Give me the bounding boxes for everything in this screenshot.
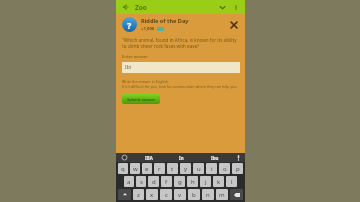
- staticText: s: [140, 178, 143, 186]
- button[interactable]: Ibu: [198, 153, 231, 162]
- staticText: "Which animal, found in Africa, is known…: [122, 37, 240, 49]
- button[interactable]: n: [202, 189, 214, 200]
- button[interactable]: v: [174, 189, 186, 200]
- staticText: l: [231, 178, 233, 186]
- staticText: Write the answer in English. If it's dif…: [122, 79, 240, 89]
- staticText: w: [133, 165, 138, 173]
- button[interactable]: r: [154, 163, 165, 174]
- staticText: Zoo: [135, 3, 147, 12]
- staticText: h: [191, 178, 195, 186]
- staticText: +1,000: [141, 26, 155, 32]
- staticText: o: [223, 165, 227, 173]
- button[interactable]: x: [146, 189, 158, 200]
- staticText: b: [192, 191, 196, 199]
- staticText: Riddle of the Day: [141, 17, 189, 25]
- button[interactable]: p: [232, 163, 243, 174]
- button[interactable]: Ibi: [122, 62, 240, 73]
- staticText: Ibu: [211, 155, 219, 161]
- staticText: IBA: [145, 155, 153, 161]
- button[interactable]: Voice input: [231, 153, 245, 162]
- staticText: Submit answer: [127, 97, 156, 102]
- button[interactable]: y: [180, 163, 191, 174]
- button[interactable]: f: [161, 176, 172, 187]
- button[interactable]: k: [213, 176, 224, 187]
- staticText: r: [158, 165, 161, 173]
- button[interactable]: z: [133, 189, 144, 200]
- staticText: n: [206, 191, 210, 199]
- staticText: v: [178, 191, 182, 199]
- button[interactable]: m: [216, 189, 228, 200]
- button[interactable]: i: [206, 163, 217, 174]
- staticText: t: [171, 165, 174, 173]
- button[interactable]: Back: [120, 2, 130, 12]
- button[interactable]: d: [148, 176, 159, 187]
- staticText: a: [127, 178, 131, 186]
- button[interactable]: c: [160, 189, 172, 200]
- button[interactable]: Settings: [116, 153, 132, 162]
- staticText: k: [217, 178, 221, 186]
- staticText: z: [137, 191, 140, 199]
- button[interactable]: q: [118, 163, 128, 174]
- button[interactable]: s: [136, 176, 146, 187]
- button[interactable]: j: [200, 176, 211, 187]
- button[interactable]: w: [130, 163, 140, 174]
- staticText: i: [211, 165, 213, 173]
- button[interactable]: l: [226, 176, 237, 187]
- staticText: i: [235, 3, 237, 12]
- staticText: d: [152, 178, 156, 186]
- staticText: c: [165, 191, 168, 199]
- button[interactable]: Submit answer: [122, 94, 160, 104]
- button[interactable]: In: [165, 153, 198, 162]
- staticText: x: [150, 191, 154, 199]
- staticText: Enter answer: [122, 54, 148, 60]
- button[interactable]: Expand: [217, 2, 227, 12]
- button[interactable]: IBA: [132, 153, 165, 162]
- button[interactable]: Shift: [118, 189, 131, 200]
- button[interactable]: Close: [228, 19, 240, 31]
- staticText: p: [236, 165, 240, 173]
- button[interactable]: o: [219, 163, 230, 174]
- staticText: In: [179, 155, 184, 161]
- button[interactable]: h: [187, 176, 198, 187]
- staticText: ?: [127, 19, 132, 31]
- staticText: q: [121, 165, 125, 173]
- button[interactable]: b: [188, 189, 200, 200]
- staticText: y: [184, 165, 188, 173]
- staticText: f: [165, 178, 168, 186]
- staticText: j: [205, 178, 207, 186]
- button[interactable]: a: [124, 176, 134, 187]
- staticText: Ibi: [125, 64, 132, 71]
- button[interactable]: t: [167, 163, 178, 174]
- button[interactable]: e: [142, 163, 152, 174]
- button[interactable]: Info: [231, 2, 241, 12]
- staticText: g: [178, 178, 182, 186]
- staticText: e: [145, 165, 149, 173]
- staticText: u: [197, 165, 201, 173]
- button[interactable]: u: [193, 163, 204, 174]
- button[interactable]: g: [174, 176, 185, 187]
- staticText: m: [219, 191, 225, 199]
- button[interactable]: Backspace: [230, 189, 243, 200]
